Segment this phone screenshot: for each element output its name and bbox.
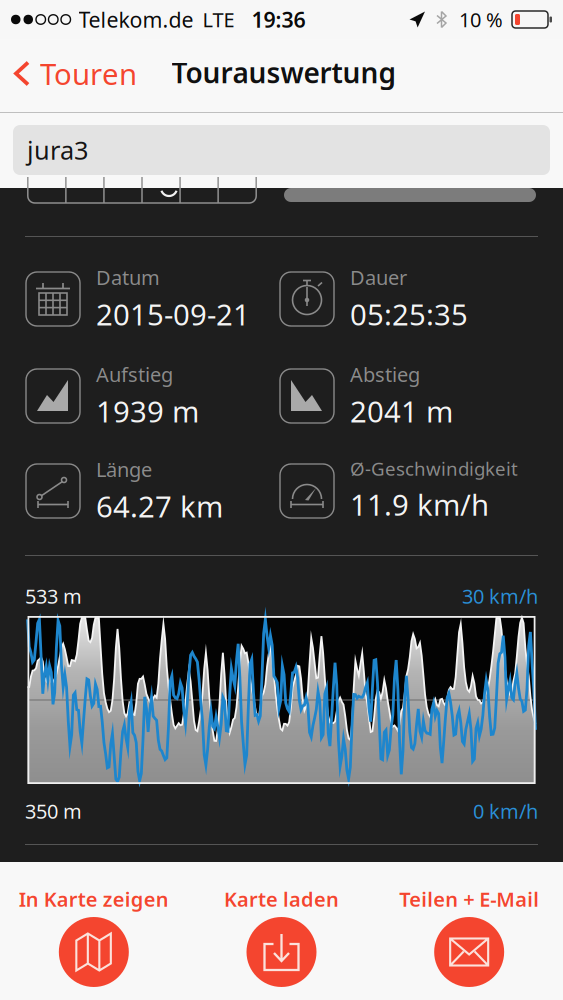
staticText: Touren bbox=[40, 54, 137, 93]
button[interactable]: Teilen + E-Mail bbox=[375, 862, 563, 1000]
staticText: 0 km/h bbox=[473, 798, 538, 824]
staticText: 11.9 km/h bbox=[350, 485, 489, 524]
staticText: Karte laden bbox=[224, 886, 339, 912]
button[interactable]: In Karte zeigen bbox=[0, 862, 188, 1000]
staticText: Telekom.de bbox=[78, 5, 193, 34]
staticText: 350 m bbox=[25, 798, 82, 824]
staticText: Datum bbox=[96, 264, 160, 291]
staticText: Aufstieg bbox=[96, 361, 173, 388]
staticText: Ø-Geschwindigkeit bbox=[350, 456, 518, 481]
staticText: In Karte zeigen bbox=[19, 886, 169, 912]
button[interactable]: Touren bbox=[0, 44, 147, 107]
staticText: 10 % bbox=[459, 6, 503, 33]
staticText: Abstieg bbox=[350, 361, 420, 388]
staticText: 533 m bbox=[25, 583, 82, 609]
staticText: 2041 m bbox=[350, 392, 453, 431]
staticText: Tourauswertung bbox=[171, 54, 396, 91]
staticText: 2015-09-21 bbox=[96, 295, 250, 334]
staticText: jura3 bbox=[27, 133, 88, 167]
staticText: 30 km/h bbox=[462, 583, 538, 609]
staticText: Teilen + E-Mail bbox=[399, 886, 539, 912]
staticText: 64.27 km bbox=[96, 487, 223, 526]
staticText: Dauer bbox=[350, 264, 407, 291]
staticText: 05:25:35 bbox=[350, 295, 468, 334]
staticText: Länge bbox=[96, 456, 152, 483]
button[interactable]: Karte laden bbox=[188, 862, 375, 1000]
staticText: 19:36 bbox=[251, 5, 305, 34]
staticText: LTE bbox=[202, 6, 234, 33]
staticText: 1939 m bbox=[96, 392, 199, 431]
